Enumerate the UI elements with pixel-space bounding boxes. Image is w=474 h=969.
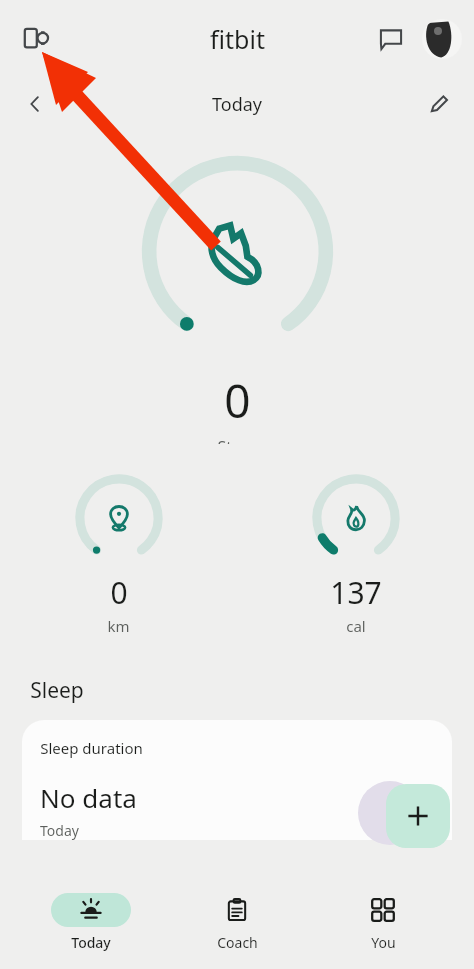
staticText: Today: [71, 933, 111, 952]
staticText: 137: [330, 572, 382, 613]
staticText: Steps: [217, 436, 259, 444]
button[interactable]: Devices: [14, 15, 62, 63]
staticText: Today: [212, 92, 262, 117]
staticText: 0: [110, 572, 128, 613]
staticText: Sleep duration: [40, 738, 143, 758]
staticText: You: [371, 933, 396, 952]
button[interactable]: 137: [237, 470, 474, 636]
staticText: km: [107, 616, 130, 636]
staticText: fitbit: [210, 22, 265, 56]
button[interactable]: Today: [36, 893, 146, 952]
staticText: Today: [40, 821, 79, 840]
button[interactable]: 0: [0, 470, 237, 636]
staticText: Sleep: [30, 676, 84, 705]
button[interactable]: Edit: [418, 83, 460, 125]
button[interactable]: Messages: [368, 16, 414, 62]
staticText: Coach: [217, 933, 258, 952]
button[interactable]: Profile: [422, 19, 462, 59]
staticText: No data: [40, 780, 137, 815]
button[interactable]: Sleep duration: [22, 720, 452, 840]
button[interactable]: Coach: [182, 893, 292, 952]
button[interactable]: You: [328, 893, 438, 952]
button[interactable]: Back: [14, 83, 56, 125]
button[interactable]: Secondary action: [358, 781, 422, 845]
staticText: cal: [346, 616, 366, 636]
button[interactable]: Add: [386, 784, 450, 848]
staticText: 0: [224, 369, 251, 432]
